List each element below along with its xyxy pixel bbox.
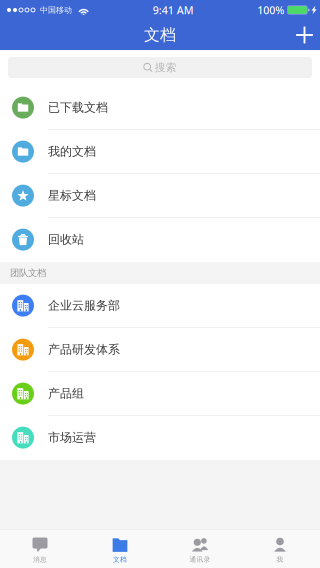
button[interactable]: 已下载文档 — [0, 86, 320, 130]
button[interactable]: 文档 — [80, 529, 160, 568]
staticText: 文档 — [113, 555, 127, 564]
staticText: 星标文档 — [48, 188, 96, 203]
staticText: 市场运营 — [48, 430, 96, 445]
button[interactable]: 产品研发体系 — [0, 328, 320, 372]
staticText: 通讯录 — [189, 555, 210, 564]
button[interactable]: 消息 — [0, 529, 80, 568]
staticText: 我 — [276, 555, 283, 564]
staticText: 文档 — [144, 25, 176, 45]
staticText: 我的文档 — [48, 144, 96, 159]
staticText: 回收站 — [48, 232, 84, 247]
staticText: 团队文档 — [10, 267, 46, 279]
button[interactable]: 我 — [240, 529, 320, 568]
staticText: 产品组 — [48, 386, 84, 401]
button[interactable]: 通讯录 — [160, 529, 240, 568]
staticText: 已下载文档 — [48, 100, 108, 115]
button[interactable]: 搜索 — [8, 57, 312, 78]
button[interactable]: 产品组 — [0, 372, 320, 416]
button[interactable]: 星标文档 — [0, 174, 320, 218]
staticText: 9:41 AM — [153, 3, 194, 17]
button[interactable]: 我的文档 — [0, 130, 320, 174]
staticText: 消息 — [33, 555, 47, 564]
staticText: 产品研发体系 — [48, 342, 120, 357]
staticText: 搜索 — [155, 61, 177, 74]
button[interactable]: 新建 — [286, 20, 320, 49]
staticText: 企业云服务部 — [48, 298, 120, 313]
button[interactable]: 企业云服务部 — [0, 284, 320, 328]
staticText: 中国移动 — [40, 5, 72, 15]
button[interactable]: 市场运营 — [0, 416, 320, 460]
button[interactable]: 回收站 — [0, 218, 320, 262]
staticText: 100% — [257, 3, 284, 17]
